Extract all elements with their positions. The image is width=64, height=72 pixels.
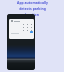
- button[interactable]: Confirm: [9, 19, 34, 39]
- staticText: location: [25, 12, 39, 17]
- button[interactable]: Confirm: [30, 31, 33, 33]
- staticText: detects parking: [19, 6, 46, 11]
- staticText: App automatically: [17, 0, 48, 5]
